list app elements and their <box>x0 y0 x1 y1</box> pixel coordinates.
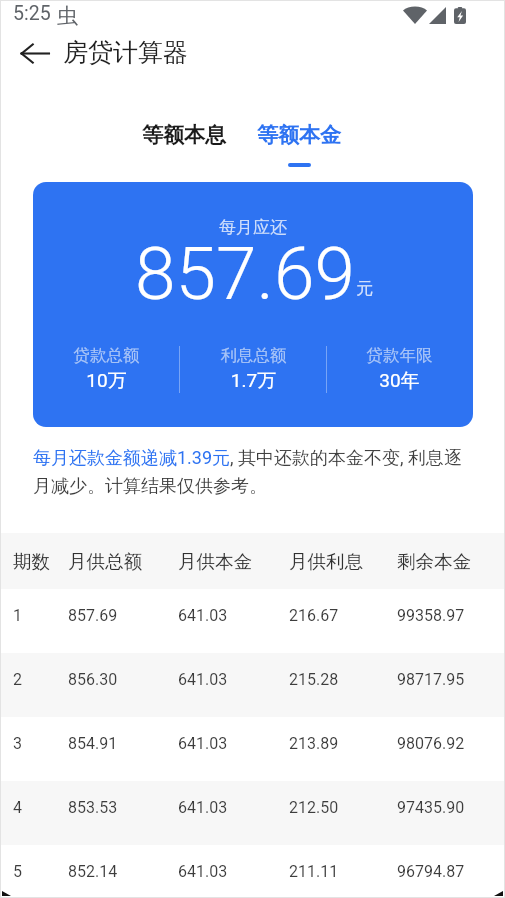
staticText: 每月还款金额递减1.39元, 其中还款的本金不变, 利息逐月减少。计算结果仅供参… <box>33 447 463 497</box>
staticText: 利息总额 <box>180 345 327 366</box>
button[interactable]: 等额本金 <box>246 112 352 168</box>
staticText: 211.11 <box>289 862 339 881</box>
staticText: 216.67 <box>289 606 339 625</box>
staticText: 641.03 <box>178 606 228 625</box>
staticText: 97435.90 <box>397 798 465 817</box>
button[interactable]: 1 <box>0 589 505 653</box>
staticText: 月供利息 <box>289 550 363 573</box>
staticText: 854.91 <box>68 734 118 753</box>
staticText: 98717.95 <box>397 670 465 689</box>
staticText: 1.7万 <box>180 369 327 393</box>
staticText: 期数 <box>13 550 50 573</box>
staticText: 元 <box>356 278 373 299</box>
button[interactable]: 2 <box>0 653 505 717</box>
staticText: 1 <box>13 606 22 625</box>
button[interactable]: 4 <box>0 781 505 845</box>
staticText: 641.03 <box>178 734 228 753</box>
staticText: 5:25 <box>13 2 51 25</box>
staticText: 30年 <box>326 369 473 393</box>
staticText: 852.14 <box>68 862 118 881</box>
staticText: 剩余本金 <box>397 550 471 573</box>
staticText: 贷款总额 <box>33 345 180 366</box>
staticText: 房贷计算器 <box>63 37 188 68</box>
staticText: 857.69 <box>135 231 355 317</box>
staticText: 等额本息 <box>142 122 226 148</box>
staticText: 5 <box>13 862 22 881</box>
button[interactable]: 3 <box>0 717 505 781</box>
staticText: 856.30 <box>68 670 118 689</box>
staticText: 212.50 <box>289 798 339 817</box>
staticText: 2 <box>13 670 22 689</box>
staticText: 贷款年限 <box>326 345 473 366</box>
staticText: 每月应还 <box>33 217 473 238</box>
staticText: 641.03 <box>178 670 228 689</box>
staticText: 10万 <box>33 369 180 393</box>
staticText: 213.89 <box>289 734 339 753</box>
staticText: 857.69 <box>68 606 118 625</box>
staticText: 4 <box>13 798 22 817</box>
button[interactable]: 等额本息 <box>131 112 237 156</box>
staticText: 98076.92 <box>397 734 465 753</box>
staticText: 虫 <box>57 3 78 29</box>
staticText: 月供本金 <box>178 550 252 573</box>
button[interactable]: Back <box>8 33 62 73</box>
staticText: 月供总额 <box>68 550 142 573</box>
staticText: 96794.87 <box>397 862 465 881</box>
staticText: 641.03 <box>178 862 228 881</box>
staticText: 99358.97 <box>397 606 465 625</box>
staticText: 641.03 <box>178 798 228 817</box>
staticText: 853.53 <box>68 798 118 817</box>
staticText: 215.28 <box>289 670 339 689</box>
staticText: 等额本金 <box>257 122 341 148</box>
button[interactable]: 5 <box>0 845 505 898</box>
staticText: 3 <box>13 734 22 753</box>
